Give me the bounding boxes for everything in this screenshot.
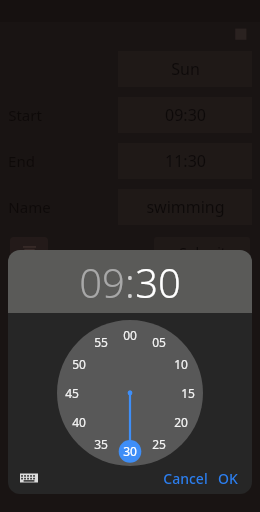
staticText: 55 [94, 334, 108, 350]
button[interactable]: End [8, 138, 252, 184]
staticText: 50 [72, 356, 86, 372]
staticText: End [8, 151, 35, 171]
staticText: 09:30 [165, 104, 206, 126]
button[interactable]: Start [8, 92, 252, 138]
staticText: 11:30 [165, 150, 206, 172]
button[interactable]: Submit [154, 237, 250, 267]
staticText: : [125, 255, 135, 309]
staticText: 00 [123, 327, 137, 343]
button[interactable]: 00 [57, 320, 203, 466]
staticText: Name [8, 197, 51, 217]
staticText: Submit [179, 243, 226, 262]
staticText: Cancel [163, 469, 208, 488]
staticText: 20 [174, 414, 188, 430]
staticText: 05 [152, 334, 166, 350]
staticText: 45 [65, 385, 79, 401]
button[interactable]: Delete [10, 237, 48, 267]
staticText: 30 [123, 443, 137, 459]
button[interactable]: Sun [8, 46, 252, 92]
staticText: 40 [72, 414, 86, 430]
staticText: 09 [79, 255, 125, 309]
staticText: 10 [174, 356, 188, 372]
button[interactable]: Cancel [163, 469, 208, 488]
button[interactable]: Name [8, 184, 252, 230]
staticText: OK [218, 469, 238, 488]
button[interactable]: OK [218, 469, 238, 488]
staticText: swimming [146, 196, 225, 218]
staticText: 25 [152, 436, 166, 452]
staticText: 15 [181, 385, 195, 401]
staticText: Start [8, 105, 42, 125]
button[interactable]: 30 [135, 255, 181, 309]
button[interactable]: Save [232, 25, 250, 43]
staticText: 30 [135, 255, 181, 309]
staticText: Sun [171, 58, 200, 80]
staticText: 35 [94, 436, 108, 452]
button[interactable]: 09 [79, 255, 125, 309]
button[interactable]: Switch to keyboard input [20, 469, 38, 487]
